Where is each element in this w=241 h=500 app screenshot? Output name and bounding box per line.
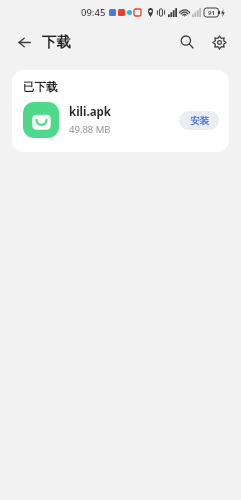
staticText: 49.88 MB (69, 123, 111, 136)
staticText: 09:45 (81, 6, 106, 19)
button[interactable]: 安装 (179, 111, 219, 130)
button[interactable]: Back (10, 28, 38, 56)
staticText: 91 (208, 9, 215, 17)
button[interactable]: Search (173, 28, 201, 56)
staticText: 下载 (42, 33, 71, 51)
staticText: 已下载 (23, 80, 58, 94)
staticText: 安装 (190, 115, 209, 127)
staticText: kili.apk (69, 104, 111, 120)
button[interactable]: Settings (205, 28, 233, 56)
button[interactable]: kili.apk (12, 102, 229, 152)
